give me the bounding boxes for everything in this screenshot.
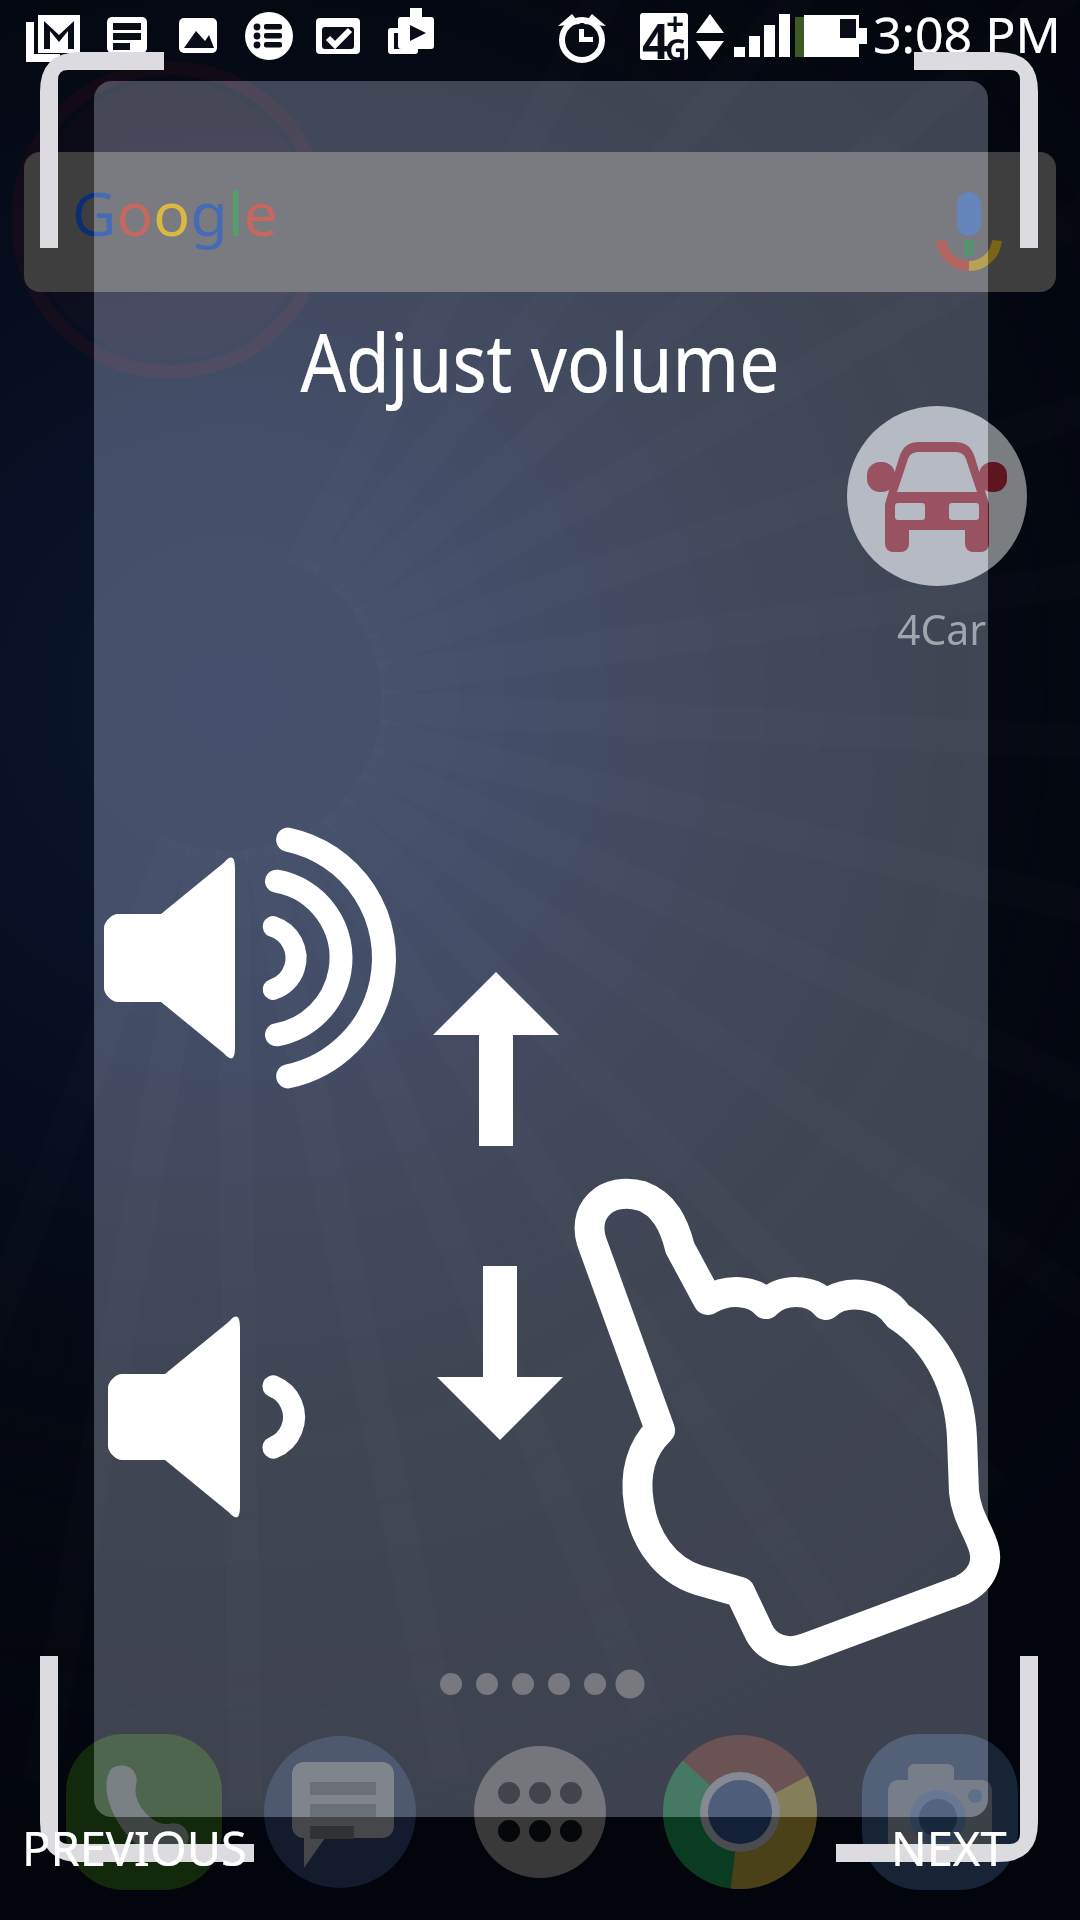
staticText: 4Car xyxy=(897,601,987,657)
staticText: + xyxy=(666,2,685,46)
button[interactable]: NEXT xyxy=(866,1813,1046,1883)
staticText: 3:08 PM xyxy=(873,0,1061,68)
button[interactable]: PREVIOUS xyxy=(6,1813,262,1883)
staticText: NEXT xyxy=(891,1816,1007,1880)
staticText: 4 xyxy=(642,8,670,73)
staticText: PREVIOUS xyxy=(22,1816,247,1880)
staticText: Google xyxy=(72,171,278,254)
staticText: Adjust volume xyxy=(65,305,1015,415)
staticText: G xyxy=(665,29,687,70)
